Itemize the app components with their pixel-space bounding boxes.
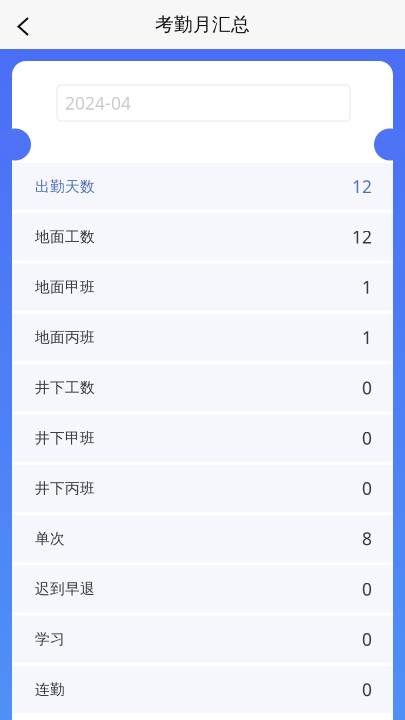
button[interactable]: 井下工数: [12, 364, 393, 411]
button[interactable]: 迟到早退: [12, 565, 393, 612]
staticText: 0: [362, 678, 372, 701]
staticText: 12: [352, 225, 372, 248]
staticText: 12: [352, 175, 372, 198]
staticText: 考勤月汇总: [155, 13, 250, 36]
button[interactable]: 学习: [12, 616, 393, 663]
staticText: 出勤天数: [35, 177, 95, 195]
staticText: 0: [362, 628, 372, 651]
staticText: 井下甲班: [35, 429, 95, 447]
staticText: 地面甲班: [35, 278, 95, 296]
button[interactable]: 地面丙班: [12, 314, 393, 361]
button[interactable]: 井下丙班: [12, 465, 393, 512]
button[interactable]: 2024-04: [57, 85, 350, 121]
staticText: 井下工数: [35, 379, 95, 397]
button[interactable]: 连勤: [12, 666, 393, 713]
button[interactable]: Back: [0, 0, 41, 49]
staticText: 井下丙班: [35, 479, 95, 497]
button[interactable]: 地面甲班: [12, 264, 393, 311]
staticText: 单次: [35, 530, 65, 548]
staticText: 1: [362, 326, 372, 349]
staticText: 0: [362, 577, 372, 600]
staticText: 0: [362, 477, 372, 500]
button[interactable]: 出勤天数: [12, 163, 393, 210]
staticText: 1: [362, 276, 372, 299]
staticText: 学习: [35, 630, 65, 648]
button[interactable]: 地面工数: [12, 213, 393, 260]
staticText: 地面丙班: [35, 328, 95, 346]
staticText: 2024-04: [65, 91, 131, 114]
staticText: 0: [362, 376, 372, 399]
staticText: 0: [362, 426, 372, 449]
staticText: 地面工数: [35, 228, 95, 246]
button[interactable]: 单次: [12, 515, 393, 562]
staticText: 连勤: [35, 680, 65, 698]
staticText: 8: [362, 527, 372, 550]
staticText: 迟到早退: [35, 580, 95, 598]
button[interactable]: 井下甲班: [12, 414, 393, 461]
